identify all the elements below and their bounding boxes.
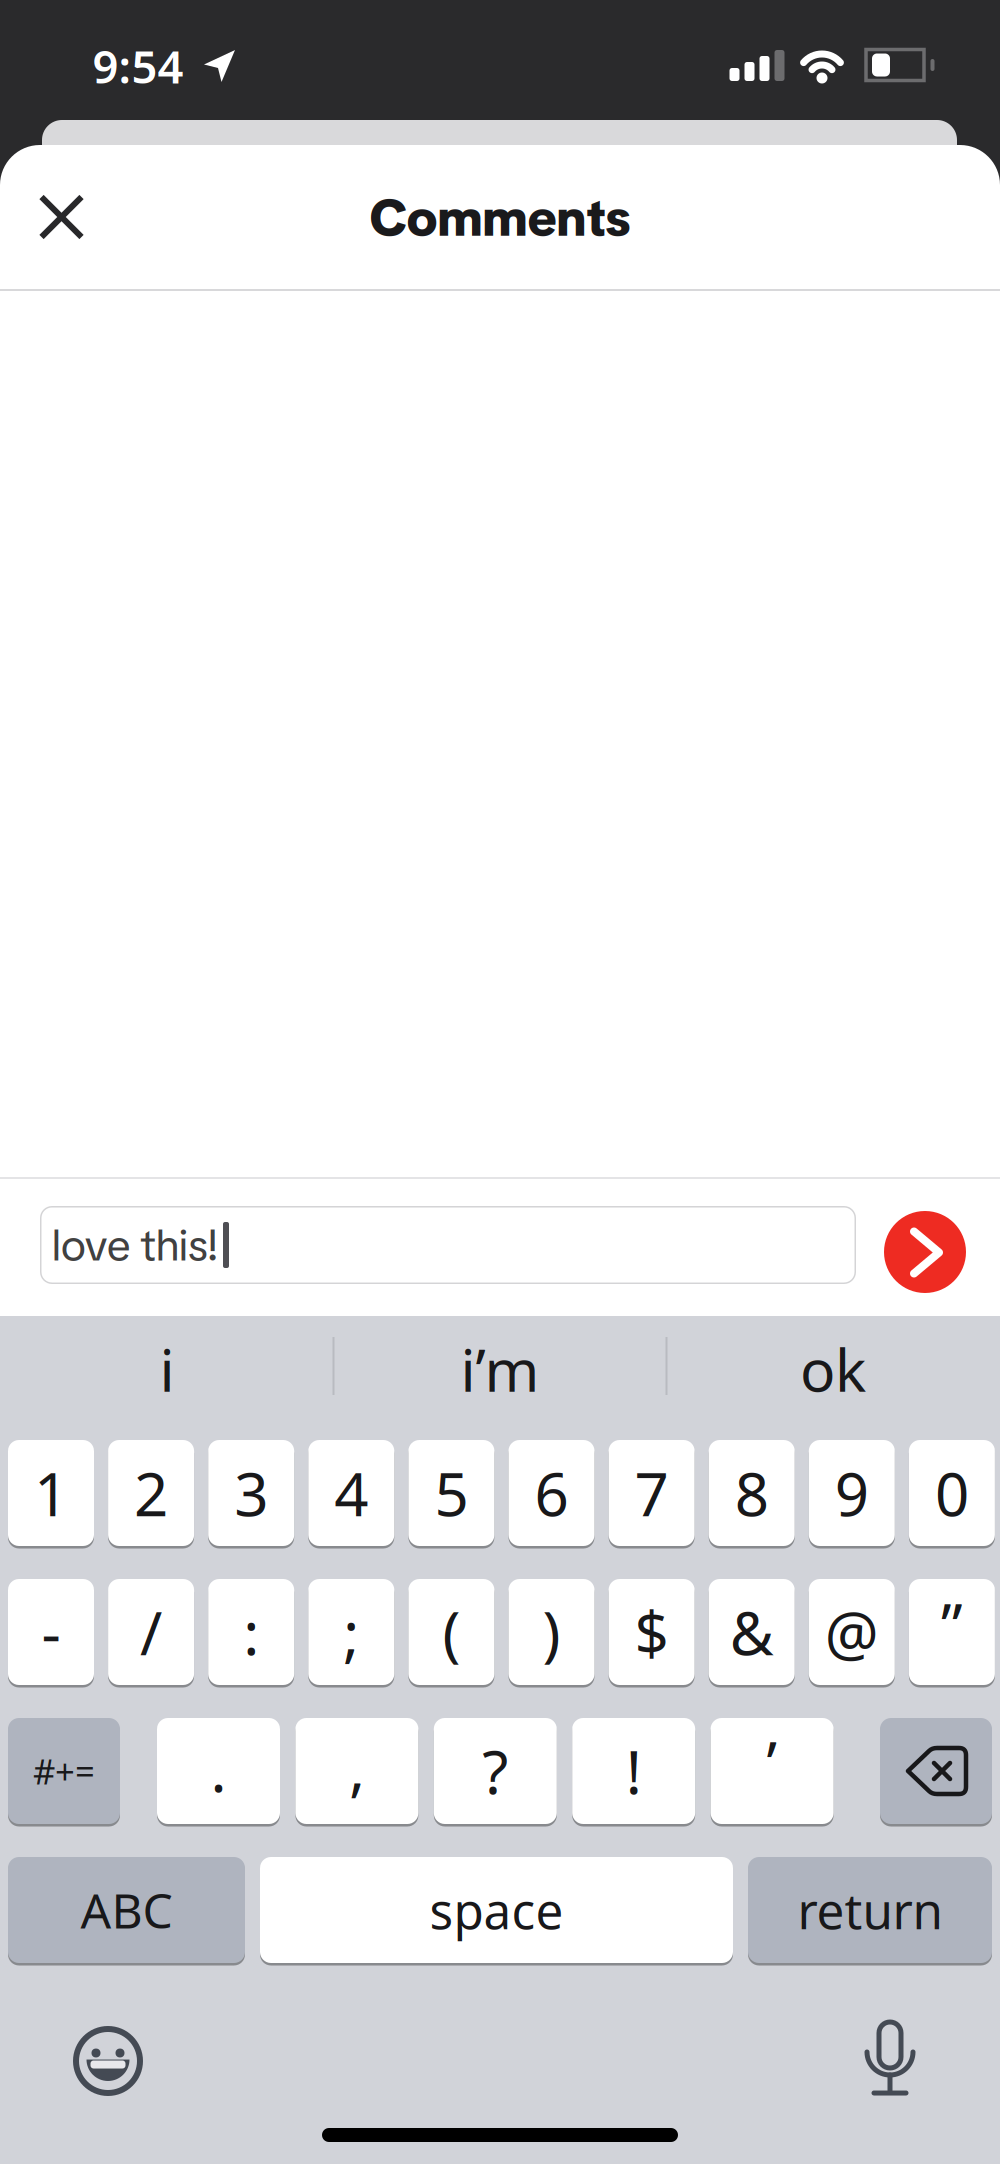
button[interactable]: ;	[308, 1579, 394, 1685]
button[interactable]: i’m	[350, 1314, 650, 1424]
button[interactable]: ?	[434, 1718, 557, 1824]
staticText: #+=	[33, 1748, 95, 1794]
button[interactable]: 0	[909, 1440, 995, 1546]
button[interactable]: 2	[108, 1440, 194, 1546]
button[interactable]: 7	[609, 1440, 695, 1546]
staticText: 6	[534, 1453, 568, 1533]
button[interactable]: i	[17, 1314, 317, 1424]
button[interactable]: :	[208, 1579, 294, 1685]
button[interactable]: Dictation	[850, 2012, 930, 2102]
button[interactable]: 3	[208, 1440, 294, 1546]
button[interactable]: (	[408, 1579, 494, 1685]
staticText: )	[542, 1592, 560, 1672]
button[interactable]: !	[572, 1718, 695, 1824]
button[interactable]: ”	[909, 1579, 995, 1685]
button[interactable]: Send	[884, 1211, 966, 1293]
button[interactable]: 9	[809, 1440, 895, 1546]
button[interactable]: /	[108, 1579, 194, 1685]
staticText: ’	[767, 1722, 778, 1802]
button[interactable]: 6	[508, 1440, 594, 1546]
button[interactable]: Delete	[880, 1718, 992, 1824]
staticText: 7	[635, 1453, 669, 1533]
staticText: return	[797, 1877, 942, 1943]
button[interactable]: 4	[308, 1440, 394, 1546]
button[interactable]: -	[8, 1579, 94, 1685]
staticText: 2	[134, 1453, 168, 1533]
staticText: 5	[434, 1453, 468, 1533]
button[interactable]: ’	[711, 1718, 834, 1824]
staticText: i	[159, 1330, 174, 1408]
staticText: -	[41, 1592, 60, 1672]
button[interactable]: ABC	[8, 1857, 245, 1963]
button[interactable]: @	[809, 1579, 895, 1685]
button[interactable]: 5	[408, 1440, 494, 1546]
staticText: 3	[234, 1453, 268, 1533]
button[interactable]: 1	[8, 1440, 94, 1546]
staticText: ABC	[80, 1878, 172, 1942]
staticText: love this!	[52, 1216, 219, 1274]
button[interactable]: ok	[683, 1314, 983, 1424]
staticText: (	[442, 1592, 460, 1672]
button[interactable]: $	[609, 1579, 695, 1685]
button[interactable]: 8	[709, 1440, 795, 1546]
staticText: ok	[800, 1330, 866, 1408]
staticText: :	[243, 1592, 259, 1672]
button[interactable]: Emoji	[68, 2021, 148, 2101]
button[interactable]: &	[709, 1579, 795, 1685]
staticText: &	[730, 1592, 774, 1672]
staticText: ,	[349, 1727, 365, 1807]
button[interactable]: return	[748, 1857, 992, 1963]
staticText: 8	[735, 1453, 769, 1533]
staticText: 1	[34, 1453, 68, 1533]
staticText: space	[429, 1877, 563, 1943]
staticText: 0	[935, 1453, 969, 1533]
button[interactable]: .	[157, 1718, 280, 1824]
staticText: 9:54	[92, 36, 183, 96]
staticText: 4	[334, 1453, 368, 1533]
staticText: .	[210, 1729, 226, 1809]
button[interactable]: ,	[295, 1718, 418, 1824]
staticText: @	[825, 1592, 879, 1672]
staticText: 9	[835, 1453, 869, 1533]
button[interactable]: space	[260, 1857, 733, 1963]
staticText: !	[626, 1731, 642, 1811]
button[interactable]: Close	[18, 174, 104, 260]
button[interactable]: #+=	[8, 1718, 120, 1824]
staticText: ”	[941, 1584, 963, 1664]
staticText: Comments	[369, 185, 630, 251]
staticText: /	[140, 1592, 162, 1672]
button[interactable]: Comment text field	[40, 1206, 856, 1284]
button[interactable]: )	[508, 1579, 594, 1685]
staticText: i’m	[460, 1330, 539, 1408]
staticText: ;	[343, 1592, 359, 1672]
staticText: $	[635, 1592, 669, 1672]
staticText: ?	[482, 1731, 508, 1811]
